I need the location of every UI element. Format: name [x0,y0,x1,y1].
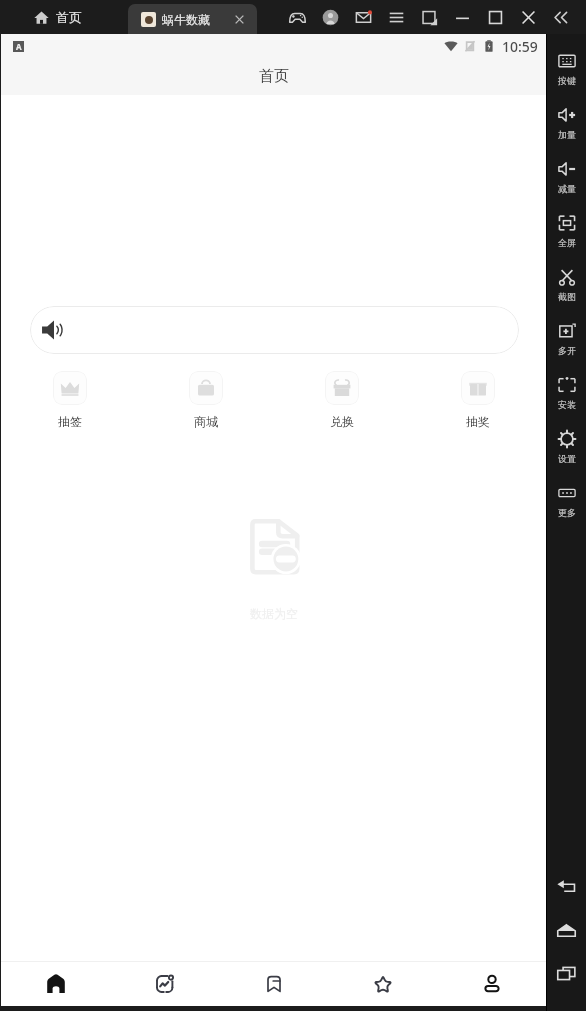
button[interactable]: Gamepad [281,1,314,34]
other: Announcements [41,317,67,343]
button[interactable]: 更多 [547,480,586,534]
button[interactable]: 全屏 [547,210,586,264]
button[interactable]: Activity [110,962,219,1006]
button[interactable]: Recents [547,952,586,995]
staticText: 按键 [558,75,576,86]
staticText: 商城 [194,414,218,429]
staticText: 安装 [558,399,576,410]
staticText: 抽奖 [466,414,490,429]
button[interactable]: Profile [437,962,546,1006]
button[interactable]: Minimize [446,1,479,34]
staticText: 减量 [558,183,576,194]
staticText: 首页 [56,9,82,25]
staticText: 更多 [558,507,576,518]
button[interactable]: Collapse [545,1,578,34]
button[interactable]: New window [413,1,446,34]
staticText: 首页 [259,67,289,86]
button[interactable]: 设置 [547,426,586,480]
button[interactable]: Mail [347,1,380,34]
button[interactable]: Account [314,1,347,34]
button[interactable]: Favorites [328,962,437,1006]
button[interactable]: Maximize [479,1,512,34]
button[interactable]: Close [512,1,545,34]
button[interactable]: 抽签 [1,371,138,429]
staticText: 设置 [558,453,576,464]
staticText: 抽签 [58,414,82,429]
button[interactable]: 加量 [547,102,586,156]
button[interactable]: 首页 [25,0,96,34]
staticText: 兑换 [330,414,354,429]
button[interactable]: Close tab [229,9,249,29]
button[interactable]: 商城 [138,371,274,429]
staticText: 10:59 [502,37,538,56]
button[interactable]: Back [547,866,586,909]
button[interactable]: 抽奖 [410,371,546,429]
button[interactable]: 减量 [547,156,586,210]
button[interactable]: 按键 [547,48,586,102]
staticText: 截图 [558,291,576,302]
staticText: 全屏 [558,237,576,248]
staticText: A [16,41,22,52]
button[interactable]: 兑换 [274,371,410,429]
staticText: 蜗牛数藏 [162,12,210,27]
button[interactable]: Menu [380,1,413,34]
button[interactable]: 多开 [547,318,586,372]
staticText: 多开 [558,345,576,356]
button[interactable]: Home [1,962,110,1006]
button[interactable]: 截图 [547,264,586,318]
button[interactable]: Home [547,909,586,952]
button[interactable]: Announcements [30,306,519,354]
button[interactable]: 蜗牛数藏 [128,4,257,34]
staticText: 数据为空 [250,606,298,621]
button[interactable]: 安装 [547,372,586,426]
staticText: 加量 [558,129,576,140]
button[interactable]: Bookmarks [219,962,328,1006]
